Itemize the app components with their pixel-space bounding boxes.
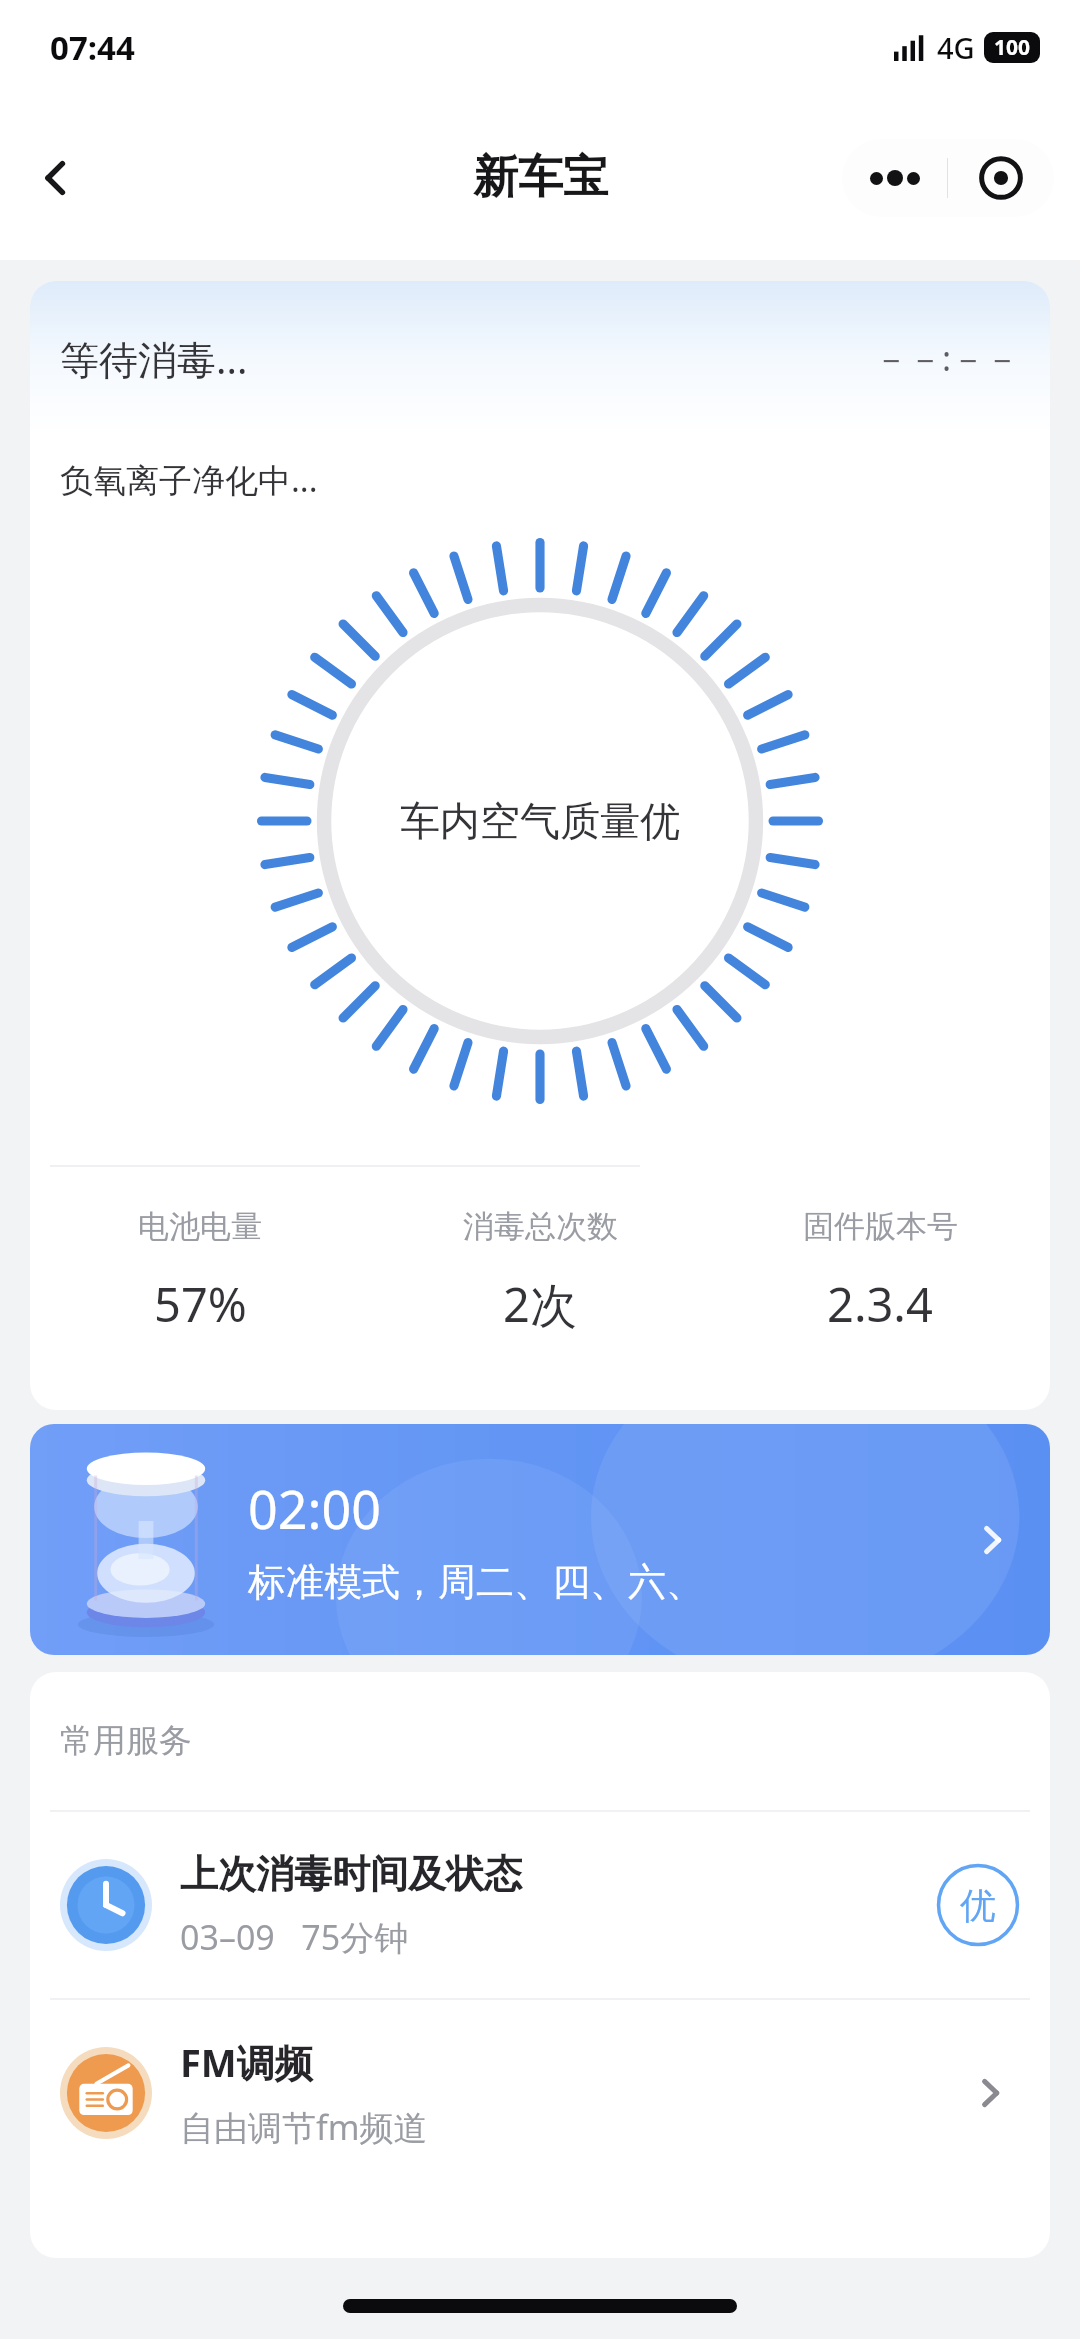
button[interactable]: Open timer settings [962,1510,1022,1570]
staticText: 4G [937,28,975,67]
staticText: 标准模式，周二、四、六、 [248,1558,704,1606]
staticText: 上次消毒时间及状态 [180,1850,522,1898]
staticText: －－:－－ [874,335,1020,381]
button[interactable]: Target [948,139,1054,217]
other: Open FM settings [960,2063,1020,2123]
staticText: 2.3.4 [827,1272,933,1336]
staticText: 车内空气质量优 [400,796,680,846]
staticText: 消毒总次数 [463,1207,618,1246]
staticText: 新车宝 [473,149,608,206]
button[interactable]: 上次消毒时间及状态 [30,1812,1050,1998]
staticText: 等待消毒... [60,332,248,385]
button[interactable]: FM调频 [30,2000,1050,2186]
staticText: 负氧离子净化中... [60,457,318,502]
staticText: 固件版本号 [803,1207,958,1246]
staticText: FM调频 [180,2036,313,2088]
staticText: 100 [994,33,1031,62]
button[interactable]: 02:00 [30,1424,1050,1655]
button[interactable]: More options [842,139,947,217]
staticText: 03–09 75分钟 [180,1914,409,1960]
button[interactable]: Back [14,136,98,220]
staticText: 优 [960,1883,996,1928]
staticText: 常用服务 [60,1720,192,1762]
staticText: 07:44 [50,25,135,70]
staticText: 电池电量 [138,1207,262,1246]
staticText: 57% [154,1272,247,1336]
staticText: 2次 [503,1272,577,1336]
staticText: 自由调节fm频道 [180,2104,428,2150]
staticText: 02:00 [248,1473,381,1544]
